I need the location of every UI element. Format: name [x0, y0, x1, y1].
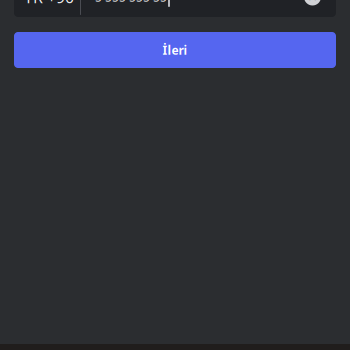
staticText: 5 555 555 55 — [95, 0, 167, 5]
staticText: ✕ — [307, 0, 317, 4]
staticText: İleri — [162, 42, 187, 58]
button[interactable]: Clear phone number — [304, 0, 321, 5]
button[interactable]: TR +90 — [14, 0, 80, 17]
staticText: TR +90 — [24, 0, 74, 8]
button[interactable]: İleri — [14, 32, 336, 68]
